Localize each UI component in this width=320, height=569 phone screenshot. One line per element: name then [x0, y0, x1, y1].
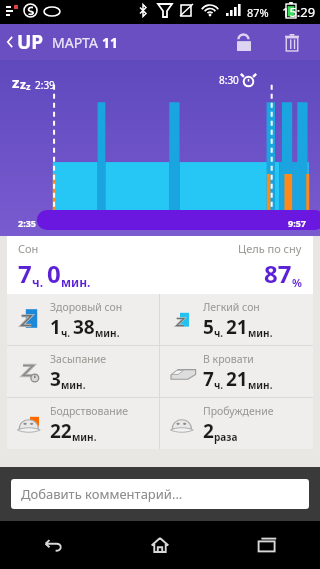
- staticText: 15:29: [282, 3, 316, 21]
- button[interactable]: Recent apps: [213, 521, 320, 569]
- staticText: %: [292, 275, 302, 290]
- staticText: 0: [47, 257, 61, 290]
- staticText: ч.: [61, 326, 73, 340]
- staticText: мин.: [61, 378, 86, 392]
- staticText: 3: [50, 366, 61, 392]
- staticText: 2: [203, 418, 214, 444]
- staticText: раза: [214, 430, 238, 444]
- staticText: Пробуждение: [203, 404, 274, 418]
- staticText: ч.: [32, 274, 47, 290]
- staticText: 87: [264, 257, 292, 290]
- button[interactable]: В кровати: [160, 346, 313, 397]
- staticText: Засыпание: [50, 352, 106, 366]
- staticText: Сон: [18, 241, 39, 256]
- staticText: Бодрствование: [50, 404, 129, 418]
- button[interactable]: Здоровый сон: [7, 294, 159, 345]
- staticText: мин.: [248, 326, 273, 340]
- staticText: z: [26, 80, 31, 92]
- staticText: ч.: [214, 378, 226, 392]
- staticText: 9:57: [288, 217, 306, 229]
- button[interactable]: Delete: [276, 26, 308, 58]
- button[interactable]: Сон: [7, 236, 313, 294]
- staticText: 2:35: [18, 217, 36, 229]
- staticText: МАРТА: [52, 33, 102, 52]
- button[interactable]: Unlock: [228, 26, 260, 58]
- staticText: Легкий сон: [203, 300, 260, 314]
- staticText: мин.: [72, 430, 97, 444]
- button[interactable]: Бодрствование: [7, 398, 159, 449]
- staticText: 7: [18, 257, 32, 290]
- staticText: мин.: [248, 378, 273, 392]
- staticText: UP: [17, 29, 44, 55]
- button[interactable]: UP: [0, 29, 119, 55]
- staticText: z: [12, 72, 20, 92]
- staticText: 21: [226, 314, 248, 340]
- button[interactable]: Пробуждение: [160, 398, 313, 449]
- staticText: 7: [203, 366, 214, 392]
- staticText: В кровати: [203, 352, 254, 366]
- button[interactable]: Легкий сон: [160, 294, 313, 345]
- staticText: 11: [102, 33, 119, 52]
- button[interactable]: Home: [106, 521, 213, 569]
- staticText: 87%: [247, 5, 269, 20]
- staticText: 38: [73, 314, 95, 340]
- staticText: 2:39: [35, 78, 55, 92]
- staticText: Цель по сну: [238, 241, 302, 256]
- staticText: 8:30: [219, 73, 239, 87]
- button[interactable]: Засыпание: [7, 346, 159, 397]
- staticText: z: [20, 76, 26, 92]
- staticText: Здоровый сон: [50, 300, 123, 314]
- button[interactable]: Добавить комментарий...: [11, 479, 309, 509]
- staticText: мин.: [61, 274, 91, 290]
- staticText: ч.: [214, 326, 226, 340]
- staticText: 21: [226, 366, 248, 392]
- staticText: Добавить комментарий...: [21, 485, 183, 503]
- staticText: 1: [50, 314, 61, 340]
- button[interactable]: Back: [0, 521, 106, 569]
- staticText: 22: [50, 418, 72, 444]
- staticText: мин.: [95, 326, 120, 340]
- staticText: 5: [203, 314, 214, 340]
